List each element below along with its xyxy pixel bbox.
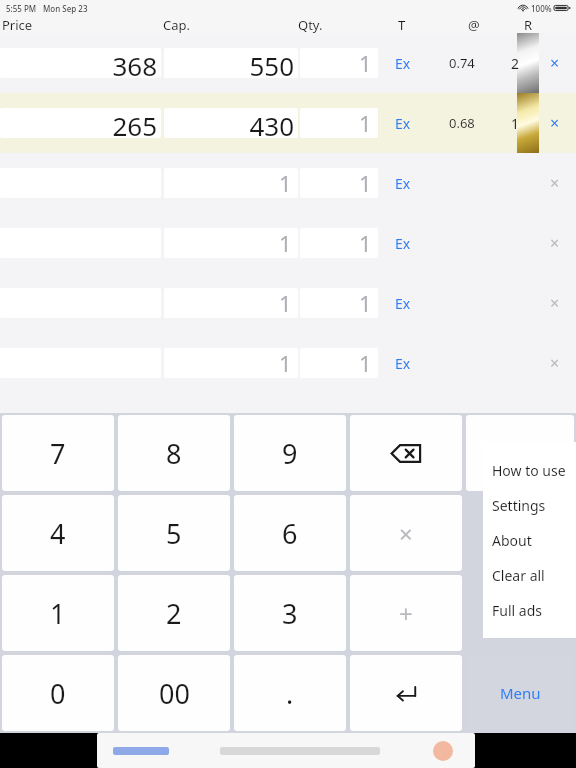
staticText: Ex [395,174,411,193]
button[interactable]: Delete row [534,273,576,333]
staticText: Ex [395,54,411,73]
staticText: 7 [50,435,66,472]
staticText: × [550,352,560,374]
staticText: 100% [531,3,552,14]
staticText: Ex [395,114,411,133]
button[interactable]: 9 [234,415,346,491]
staticText: 1 [511,114,520,133]
staticText: Ex [395,294,411,313]
button[interactable]: Ex [378,273,428,333]
button[interactable]: Ex [378,213,428,273]
staticText: Clear all [492,566,545,585]
staticText: 1 [50,595,66,632]
staticText: 1 [279,288,292,318]
button[interactable]: Ex [378,93,428,153]
button[interactable]: Advertisement [97,733,475,768]
staticText: @ [468,16,480,33]
staticText: 265 [112,108,157,138]
button[interactable]: 1 [300,48,378,78]
staticText: . [286,675,294,712]
staticText: 430 [249,108,294,138]
button[interactable]: . [234,655,346,731]
staticText: × [550,112,560,134]
button[interactable]: Ex [378,153,428,213]
staticText: Ex [395,234,411,253]
button[interactable]: 550 [164,48,298,78]
button[interactable]: Delete row [534,153,576,213]
staticText: 5 [166,515,182,552]
button[interactable]: Ex [378,333,428,393]
staticText: × [550,52,560,74]
button[interactable]: 1 [300,288,378,318]
button[interactable]: Clear all [492,558,576,593]
staticText: 550 [249,48,294,78]
staticText: 0.74 [449,54,475,72]
button[interactable]: 1 [300,168,378,198]
button[interactable]: 1 [164,228,298,258]
staticText: 2 [511,54,520,73]
staticText: × [550,172,560,194]
button[interactable]: Ex [378,33,428,93]
staticText: 1 [279,348,292,378]
button[interactable]: Delete row [534,213,576,273]
staticText: 1 [359,48,372,78]
button[interactable]: 5 [118,495,230,571]
button[interactable]: Menu [466,655,574,731]
button[interactable]: 6 [234,495,346,571]
button[interactable]: Plus [350,575,462,651]
button[interactable]: 0 [2,655,114,731]
button[interactable]: 1 [164,168,298,198]
staticText: 0.68 [449,114,475,132]
staticText: Mon Sep 23 [43,3,88,14]
staticText: Qty. [298,16,323,33]
button[interactable]: 1 [300,228,378,258]
staticText: 3 [282,595,298,632]
staticText: × [550,232,560,254]
button[interactable]: 1 [300,108,378,138]
staticText: Cap. [163,16,190,33]
button[interactable]: C [466,415,574,491]
button[interactable]: How to use [492,453,576,488]
staticText: 1 [359,108,372,138]
staticText: 2 [166,595,182,632]
button[interactable]: About [492,523,576,558]
staticText: Settings [492,496,546,515]
button[interactable]: 4 [2,495,114,571]
button[interactable]: 368 [0,48,161,78]
button[interactable]: Settings [492,488,576,523]
staticText: Menu [500,683,541,703]
staticText: 1 [279,228,292,258]
button[interactable]: 00 [118,655,230,731]
button[interactable]: 3 [234,575,346,651]
button[interactable]: Delete row [534,333,576,393]
button[interactable]: 1 [164,348,298,378]
staticText: 0 [50,675,66,712]
staticText: 1 [359,228,372,258]
staticText: × [399,517,413,550]
staticText: Full ads [492,601,542,620]
button[interactable]: 7 [2,415,114,491]
button[interactable]: Full ads [492,593,576,628]
button[interactable]: Multiply [350,495,462,571]
button[interactable]: Backspace [350,415,462,491]
button[interactable]: 8 [118,415,230,491]
staticText: 9 [282,435,298,472]
staticText: 1 [279,168,292,198]
staticText: 1 [359,288,372,318]
button[interactable]: Delete row [534,93,576,153]
staticText: C [511,435,529,472]
staticText: × [550,292,560,314]
button[interactable]: 1 [300,348,378,378]
button[interactable]: 265 [0,108,161,138]
button[interactable]: 1 [164,288,298,318]
button[interactable]: 430 [164,108,298,138]
button[interactable]: Enter [350,655,462,731]
button[interactable]: 2 [118,575,230,651]
staticText: How to use [492,461,566,480]
button[interactable]: 1 [2,575,114,651]
button[interactable]: Delete row [534,33,576,93]
